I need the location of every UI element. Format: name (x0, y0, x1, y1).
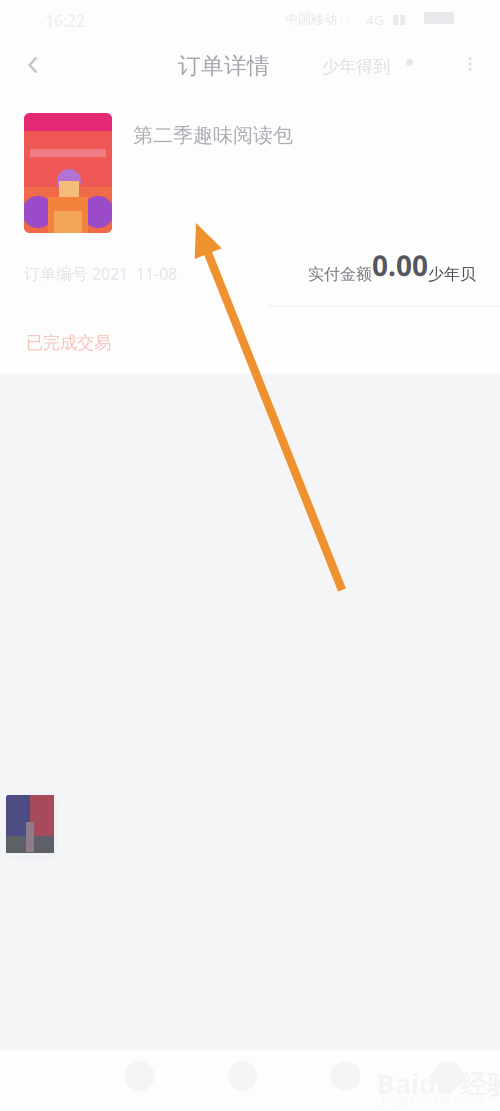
staticText: 中国移动 (285, 11, 337, 27)
button[interactable]: 更多 (463, 55, 477, 73)
button[interactable]: 少年得到 (322, 56, 390, 77)
staticText: Baidu 经验 (377, 1066, 500, 1102)
button[interactable]: 标签 (397, 1050, 500, 1111)
staticText: ▮▮ (392, 11, 406, 26)
staticText: 订单详情 (178, 52, 270, 80)
staticText: jingyan.baidu.com (382, 1091, 483, 1107)
staticText: 4G (366, 11, 384, 29)
staticText: 已完成交易 (26, 332, 111, 353)
staticText: 少年贝 (428, 264, 476, 284)
button[interactable]: 悬浮入口 (4, 792, 58, 860)
staticText: 实付金额 (308, 264, 372, 284)
staticText: · · · (332, 11, 350, 29)
staticText: 少年得到 (322, 56, 390, 77)
staticText: 第二季趣味阅读包 (133, 123, 293, 148)
staticText: 订单编号 2021 (24, 263, 128, 284)
staticText: 0.00 (372, 247, 428, 284)
staticText: 16:22 (45, 10, 85, 31)
button[interactable]: 返回 (20, 50, 46, 80)
staticText: 11-08 (136, 263, 177, 284)
